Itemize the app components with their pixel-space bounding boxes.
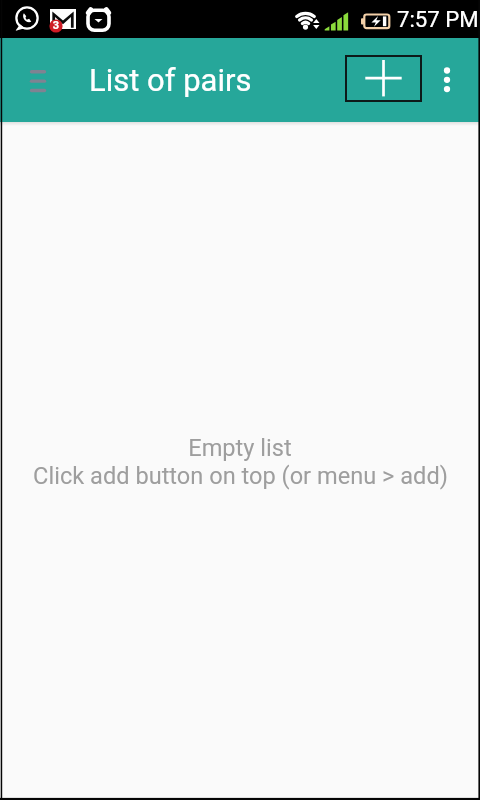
staticText: Empty list [188, 434, 292, 462]
button[interactable]: Add [345, 55, 422, 102]
staticText: Click add button on top (or menu > add) [33, 462, 448, 490]
button[interactable]: Menu [18, 57, 62, 101]
button[interactable]: More options [426, 38, 468, 122]
staticText: 7:57 PM [397, 6, 479, 32]
staticText: 3 [51, 19, 61, 32]
staticText: List of pairs [89, 62, 252, 98]
